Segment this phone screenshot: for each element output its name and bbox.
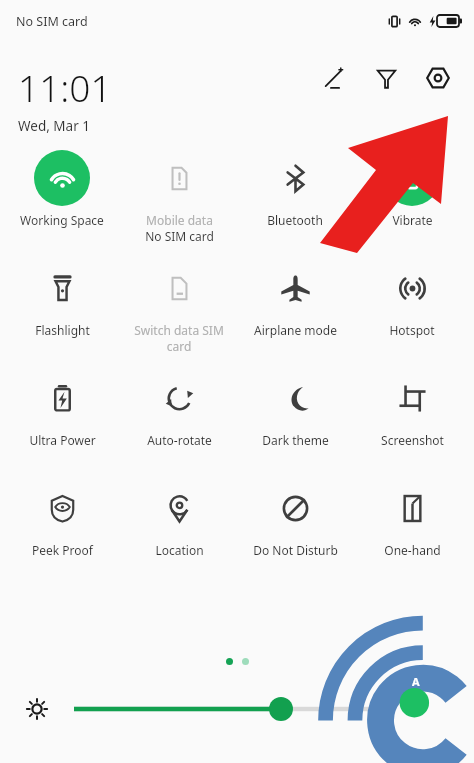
staticText: 11:01 xyxy=(18,62,112,112)
staticText: A xyxy=(412,674,420,689)
staticText: Flashlight xyxy=(35,322,90,338)
button[interactable]: Hotspot xyxy=(357,248,467,358)
button[interactable]: Airplane mode xyxy=(240,248,350,358)
button[interactable]: Brightness xyxy=(74,694,390,724)
staticText: Ultra Power xyxy=(29,432,96,448)
staticText: One-hand xyxy=(384,542,441,558)
button[interactable]: Filter xyxy=(366,58,406,98)
button[interactable]: Peek Proof xyxy=(7,468,117,578)
staticText: No SIM card xyxy=(16,13,88,30)
button[interactable]: Auto-rotate xyxy=(124,358,234,468)
staticText: Dark theme xyxy=(262,432,329,448)
staticText: No SIM card xyxy=(145,228,214,244)
staticText: Working Space xyxy=(20,212,104,228)
button[interactable]: Do Not Disturb xyxy=(240,468,350,578)
button[interactable]: Settings xyxy=(418,58,458,98)
staticText: Auto-rotate xyxy=(147,432,212,448)
button[interactable]: Location xyxy=(124,468,234,578)
button[interactable]: One-hand xyxy=(357,468,467,578)
button[interactable]: Switch data SIM card xyxy=(124,248,234,358)
button[interactable]: Mobile data xyxy=(124,138,234,248)
button[interactable]: Flashlight xyxy=(7,248,117,358)
staticText: Bluetooth xyxy=(267,212,323,228)
staticText: Location xyxy=(155,542,204,558)
button[interactable]: Working Space xyxy=(7,138,117,248)
button[interactable]: Dark theme xyxy=(240,358,350,468)
staticText: Peek Proof xyxy=(32,542,93,558)
staticText: Airplane mode xyxy=(254,322,337,338)
staticText: Wed, Mar 1 xyxy=(18,117,90,135)
staticText: Mobile data xyxy=(146,212,213,228)
button[interactable]: Ultra Power xyxy=(7,358,117,468)
staticText: Switch data SIM card xyxy=(124,322,234,354)
staticText: Hotspot xyxy=(389,322,435,338)
button[interactable]: Bluetooth xyxy=(240,138,350,248)
button[interactable]: Edit xyxy=(314,58,354,98)
button[interactable]: Vibrate xyxy=(357,138,467,248)
staticText: Vibrate xyxy=(392,212,433,228)
button[interactable]: Screenshot xyxy=(357,358,467,468)
staticText: Screenshot xyxy=(381,432,444,448)
staticText: Do Not Disturb xyxy=(253,542,338,558)
